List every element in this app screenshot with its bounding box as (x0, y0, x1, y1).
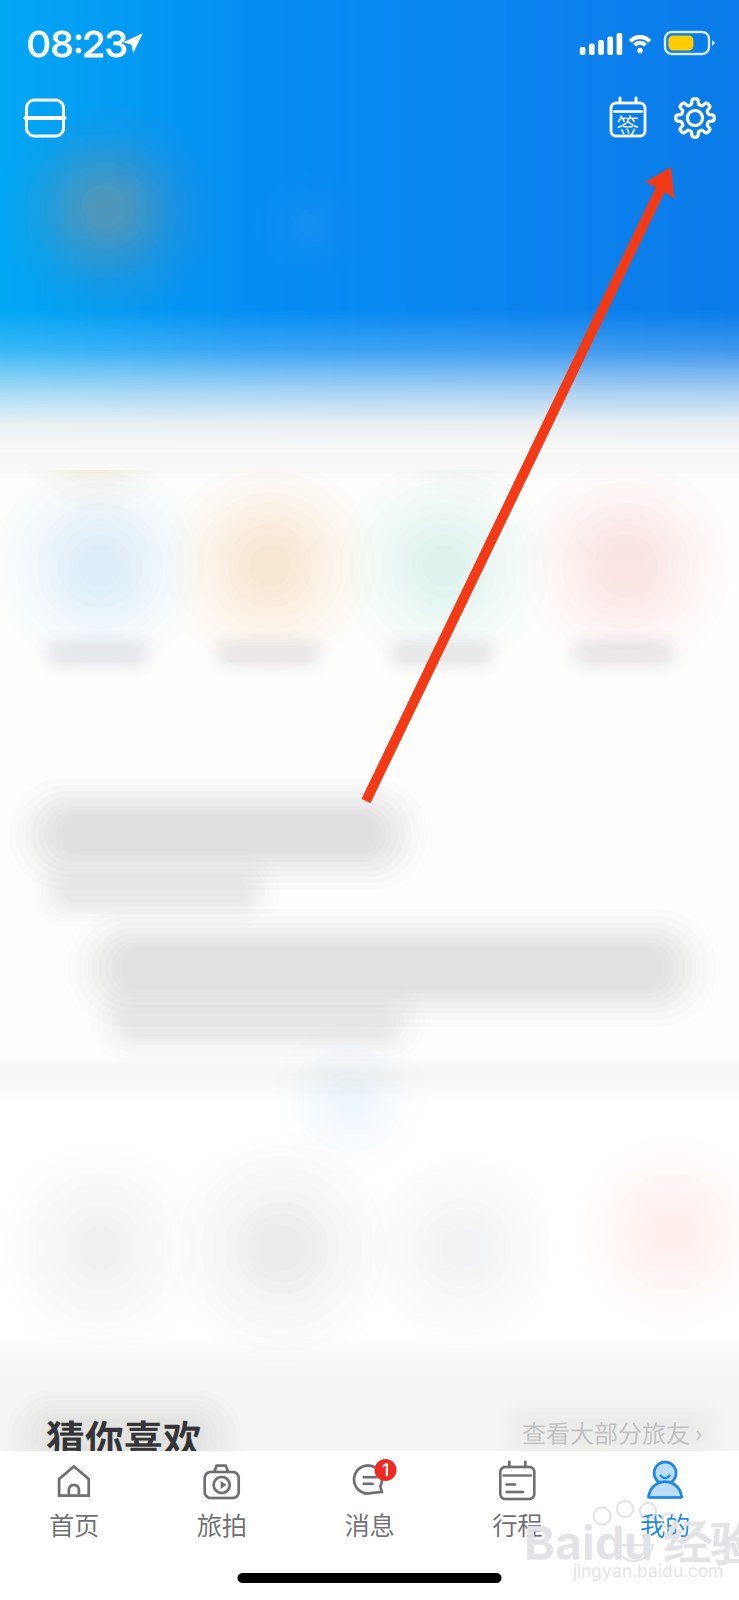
staticText: 行程 (492, 1506, 542, 1542)
button[interactable]: 旅拍 (148, 1454, 296, 1538)
staticText: Baidu 经验 (524, 1514, 739, 1574)
button[interactable]: 1 (296, 1454, 443, 1538)
staticText: 签 (616, 109, 639, 141)
button[interactable]: 行程 (443, 1454, 591, 1538)
staticText: 查看大部分旅友 › (522, 1415, 702, 1449)
staticText: 08:23 (26, 21, 127, 67)
staticText: 1 (382, 1459, 389, 1480)
staticText: 首页 (49, 1506, 99, 1542)
button[interactable]: Daily check-in (598, 86, 658, 150)
button[interactable]: Membership card (13, 86, 77, 150)
staticText: 消息 (344, 1506, 394, 1542)
staticText: 我的 (640, 1506, 690, 1542)
staticText: 旅拍 (197, 1506, 247, 1542)
button[interactable]: Settings (665, 86, 725, 150)
button[interactable]: 我的 (591, 1454, 739, 1538)
staticText: 猜你喜欢 (46, 1409, 202, 1465)
button[interactable]: 首页 (0, 1454, 148, 1538)
staticText: jingyan.baidu.com (573, 1560, 723, 1581)
